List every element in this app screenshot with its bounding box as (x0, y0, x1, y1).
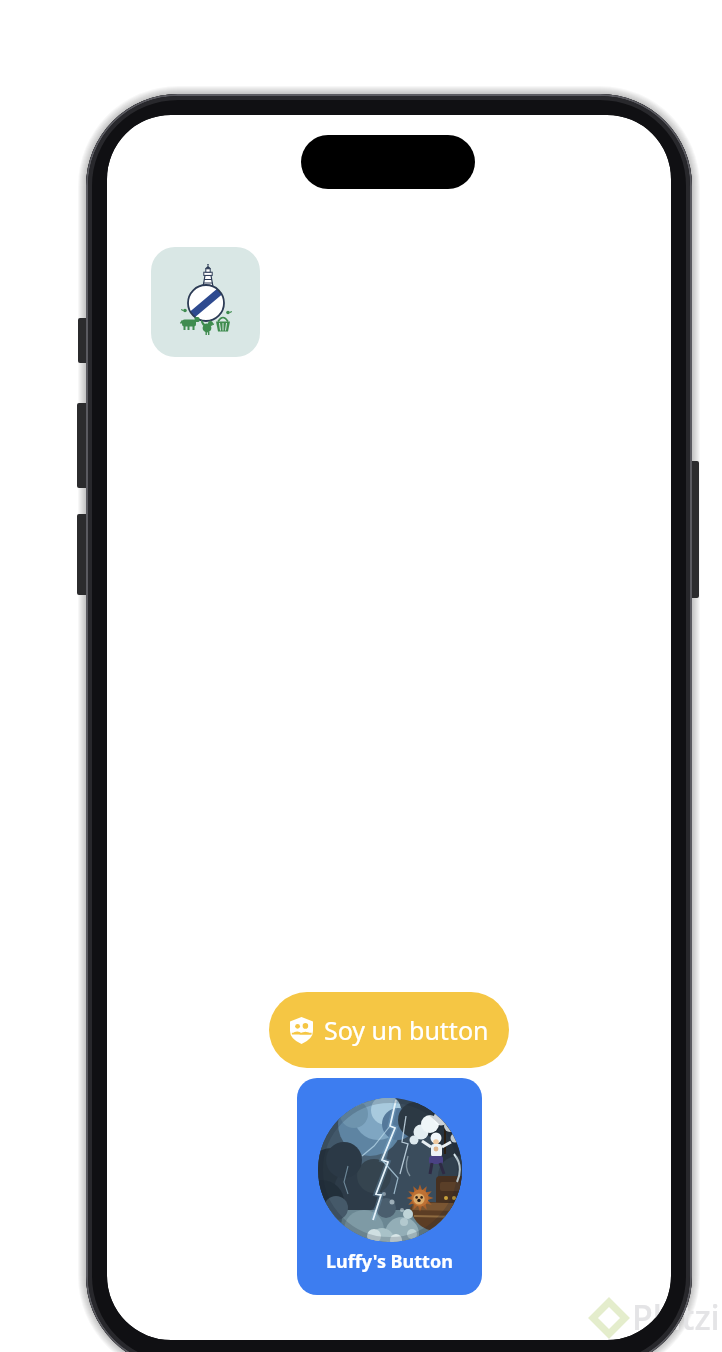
button[interactable] (151, 247, 260, 357)
button[interactable]: Luffy's Button (297, 1078, 482, 1295)
staticText: Luffy's Button (326, 1249, 453, 1274)
staticText: Platzi (632, 1294, 720, 1340)
staticText: Soy un button (324, 1013, 489, 1047)
button[interactable]: Soy un button (269, 992, 509, 1068)
